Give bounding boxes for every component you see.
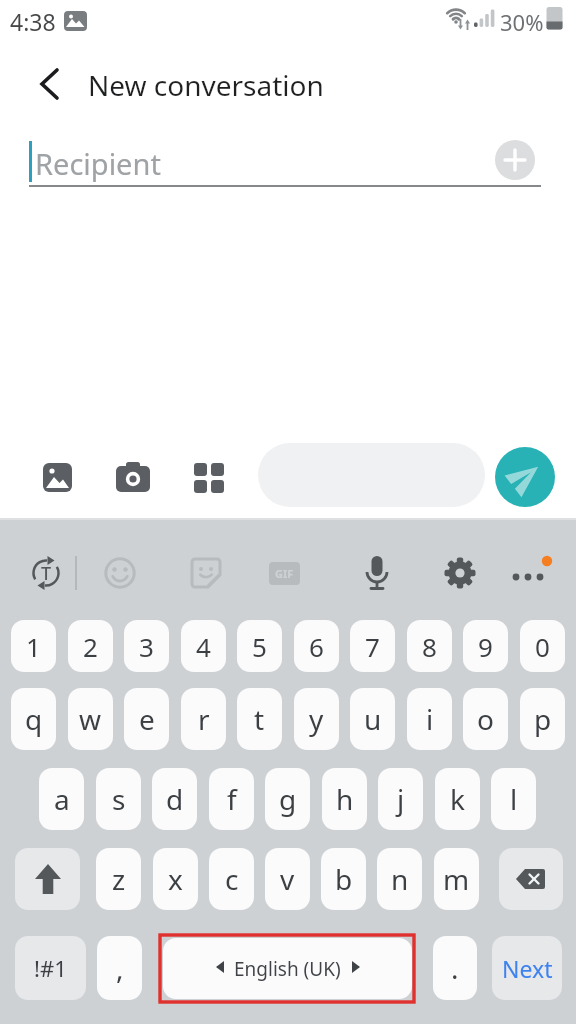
staticText: m [443,860,470,898]
button[interactable]: c [209,848,254,910]
staticText: !#1 [34,953,67,983]
staticText: 4:38 [10,6,56,37]
button[interactable] [508,551,558,595]
staticText: g [279,780,297,818]
staticText: r [198,700,210,738]
button[interactable]: u [350,688,395,750]
button[interactable]: l [491,768,536,830]
staticText: q [25,700,43,738]
button[interactable]: !#1 [15,936,86,1000]
staticText: c [225,860,239,898]
staticText: i [426,700,434,738]
button[interactable]: q [11,688,56,750]
button[interactable] [190,557,222,589]
staticText: Recipient [35,144,161,183]
button[interactable]: k [435,768,480,830]
button[interactable]: 0 [520,620,565,672]
staticText: v [280,860,295,898]
button[interactable] [495,140,535,180]
button[interactable]: o [463,688,508,750]
button[interactable] [495,447,555,507]
button[interactable]: h [322,768,367,830]
button[interactable]: , [97,936,142,1000]
button[interactable]: z [96,848,141,910]
button[interactable]: n [377,848,422,910]
button[interactable]: m [434,848,479,910]
staticText: GIF [275,566,294,581]
staticText: 4 [196,629,211,664]
button[interactable] [104,557,136,589]
button[interactable]: 7 [350,620,395,672]
button[interactable]: Next [492,936,562,1000]
button[interactable]: t [237,688,282,750]
staticText: 2 [83,629,98,664]
staticText: t [254,700,265,738]
staticText: 1 [26,629,41,664]
button[interactable]: T [26,553,66,593]
button[interactable]: 3 [124,620,169,672]
staticText: d [166,780,184,818]
staticText: , [116,949,124,987]
button[interactable]: p [520,688,565,750]
button[interactable]: b [321,848,366,910]
button[interactable]: a [39,768,84,830]
button[interactable]: f [209,768,254,830]
button[interactable]: g [265,768,310,830]
button[interactable] [194,463,224,493]
button[interactable] [360,555,394,593]
button[interactable] [15,848,80,910]
staticText: h [336,780,354,818]
button[interactable]: 5 [237,620,282,672]
staticText: y [309,700,324,738]
button[interactable]: . [433,936,477,1000]
staticText: 3 [139,629,154,664]
staticText: p [534,700,552,738]
staticText: x [168,860,183,898]
staticText: s [112,780,126,818]
button[interactable]: i [407,688,452,750]
staticText: 0 [535,629,550,664]
staticText: English (UK) [234,956,341,982]
button[interactable]: 9 [463,620,508,672]
button[interactable]: 4 [181,620,226,672]
button[interactable]: 1 [11,620,56,672]
staticText: 5 [252,629,267,664]
button[interactable]: d [152,768,197,830]
button[interactable]: w [68,688,113,750]
staticText: 6 [309,629,324,664]
staticText: z [112,860,126,898]
staticText: 9 [478,629,493,664]
staticText: l [510,780,518,818]
button[interactable]: x [153,848,198,910]
button[interactable]: r [181,688,226,750]
staticText: k [450,780,465,818]
staticText: 30% [500,7,544,37]
button[interactable]: s [96,768,141,830]
button[interactable] [36,68,64,100]
staticText: a [54,780,70,818]
staticText: b [335,860,353,898]
staticText: e [139,700,155,738]
button[interactable] [116,462,150,492]
button[interactable]: GIF [269,562,300,585]
staticText: 8 [422,629,437,664]
button[interactable]: v [265,848,310,910]
button[interactable]: e [124,688,169,750]
button[interactable]: 8 [407,620,452,672]
staticText: . [451,949,459,987]
staticText: New conversation [88,66,324,104]
staticText: Next [502,953,553,984]
staticText: w [79,700,102,738]
button[interactable]: 2 [68,620,113,672]
button[interactable] [499,848,563,910]
button[interactable] [43,463,72,492]
button[interactable]: y [294,688,339,750]
button[interactable]: j [378,768,423,830]
button[interactable]: English (UK) [163,938,412,999]
staticText: u [364,700,382,738]
staticText: n [391,860,409,898]
staticText: 7 [365,629,380,664]
button[interactable] [258,443,485,507]
button[interactable] [443,556,477,590]
button[interactable]: 6 [294,620,339,672]
